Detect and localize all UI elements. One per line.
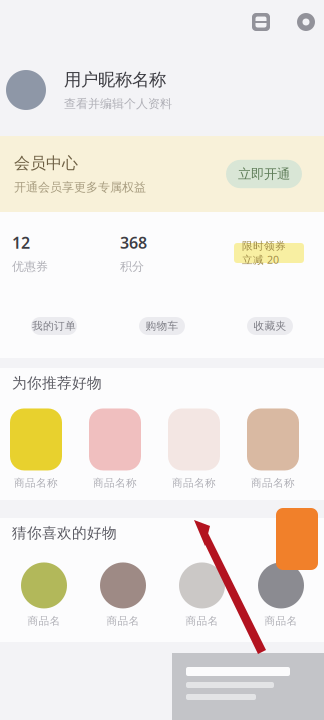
staticText: 购物车	[145, 319, 178, 332]
button[interactable]: 商品名	[97, 557, 149, 633]
staticText: 限时领券 立减 20	[242, 239, 286, 267]
staticText: 为你推荐好物	[12, 374, 102, 392]
button[interactable]: 商品名	[18, 557, 70, 633]
staticText: 商品名	[264, 614, 297, 627]
staticText: 我的订单	[32, 319, 76, 332]
staticText: 商品名	[27, 614, 60, 627]
button[interactable]: 商品名称	[10, 403, 62, 495]
button[interactable]: 商品名称	[247, 403, 299, 495]
staticText: 商品名称	[93, 476, 137, 489]
staticText: 368	[120, 232, 147, 253]
button[interactable]: Settings	[294, 10, 318, 34]
staticText: 商品名称	[172, 476, 216, 489]
staticText: 优惠券	[12, 259, 48, 274]
button[interactable]: 商品名	[255, 557, 307, 633]
staticText: 积分	[120, 259, 144, 274]
staticText: 用户昵称名称	[64, 69, 166, 90]
staticText: 查看并编辑个人资料	[64, 96, 172, 111]
staticText: 立即开通	[238, 166, 290, 182]
button[interactable]: 我的订单	[0, 294, 108, 358]
staticText: 会员中心	[14, 153, 78, 173]
button[interactable]: 商品名称	[89, 403, 141, 495]
button[interactable]: 商品名	[176, 557, 228, 633]
staticText: 开通会员享更多专属权益	[14, 180, 146, 195]
button[interactable]: 购物车	[108, 294, 216, 358]
button[interactable]: 12	[0, 212, 108, 294]
staticText: 商品名	[106, 614, 139, 627]
staticText: 商品名称	[14, 476, 58, 489]
staticText: 商品名	[185, 614, 218, 627]
button[interactable]: Scan	[249, 10, 273, 34]
staticText: 收藏夹	[253, 319, 286, 332]
button[interactable]: 立即开通	[226, 160, 302, 188]
staticText: 12	[12, 232, 30, 253]
staticText: 商品名称	[251, 476, 295, 489]
button[interactable]: 商品名称	[168, 403, 220, 495]
staticText: 猜你喜欢的好物	[12, 524, 117, 542]
button[interactable]: 限时领券 立减 20	[216, 212, 324, 294]
button[interactable]: 368	[108, 212, 216, 294]
button[interactable]: 收藏夹	[216, 294, 324, 358]
